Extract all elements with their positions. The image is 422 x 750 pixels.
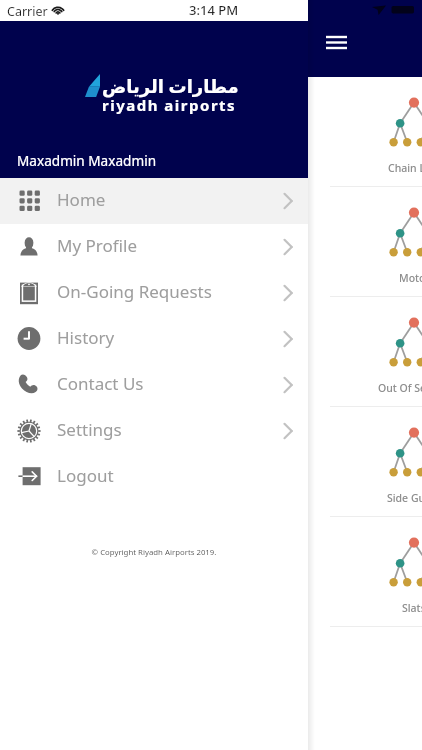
button[interactable]: On-Going Requests xyxy=(0,270,308,316)
button[interactable]: Out Of Service xyxy=(308,297,422,406)
button[interactable]: My Profile xyxy=(0,224,308,270)
button[interactable]: Logout xyxy=(0,454,308,500)
staticText: Out Of Service xyxy=(378,381,422,395)
button[interactable]: Open navigation menu xyxy=(318,25,355,62)
staticText: My Profile xyxy=(57,234,137,257)
button[interactable]: Settings xyxy=(0,408,308,454)
button[interactable]: Contact Us xyxy=(0,362,308,408)
staticText: On-Going Requests xyxy=(57,280,212,303)
button[interactable]: History xyxy=(0,316,308,362)
staticText: Contact Us xyxy=(57,372,144,395)
staticText: riyadh airports xyxy=(102,95,237,115)
staticText: Chain Link xyxy=(388,161,422,175)
staticText: Side Guide xyxy=(387,491,422,505)
staticText: Logout xyxy=(57,464,114,487)
staticText: Carrier xyxy=(7,3,48,20)
staticText: Motor xyxy=(399,271,422,285)
staticText: Slats xyxy=(402,601,422,615)
staticText: Settings xyxy=(57,418,122,441)
staticText: 3:14 PM xyxy=(189,1,239,19)
staticText: History xyxy=(57,326,115,349)
staticText: Home xyxy=(57,188,106,211)
button[interactable]: Slats xyxy=(308,517,422,626)
staticText: Maxadmin Maxadmin xyxy=(17,151,157,170)
button[interactable]: Chain Link xyxy=(308,77,422,186)
button[interactable]: Home xyxy=(0,178,308,224)
button[interactable]: Side Guide xyxy=(308,407,422,516)
staticText: مطارات الرياض xyxy=(102,74,239,99)
button[interactable]: Motor xyxy=(308,187,422,296)
staticText: © Copyright Riyadh Airports 2019. xyxy=(0,547,308,558)
